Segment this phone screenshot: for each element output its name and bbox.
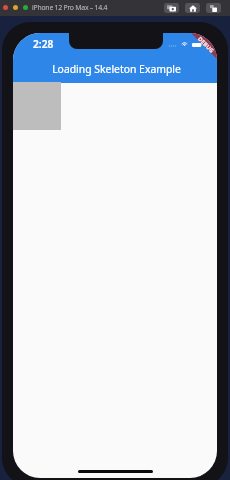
staticText: iPhone 12 Pro Max – 14.4: [32, 3, 108, 12]
staticText: Loading Skeleton Example: [52, 62, 181, 76]
staticText: DEBUG: [196, 35, 216, 55]
button[interactable]: Home: [185, 3, 200, 13]
button[interactable]: Share: [206, 3, 221, 13]
staticText: 2:28: [33, 37, 54, 51]
button[interactable]: Screenshot: [164, 3, 179, 13]
